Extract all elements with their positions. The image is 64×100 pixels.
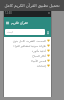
button[interactable]: أدعية مأثورة [4,48,51,53]
staticText: أدعية مأثورة [5,49,46,53]
staticText: تحميل تطبيق القرآن الكريم كامل للاندرويد… [0,3,64,9]
button[interactable]: ابحث [5,29,45,35]
staticText: المصحف الشريف كامل بدون انترنت [5,39,46,43]
button[interactable]: تلاوات صوتية لمشاهير القراء [4,43,51,48]
staticText: إعدادات [5,64,46,67]
button[interactable]: المصحف الشريف كامل بدون انترنت [4,38,51,43]
staticText: تلاوات صوتية لمشاهير القراء [5,44,46,48]
staticText: أذكار الصباح [5,54,46,58]
button[interactable]: Voice search [45,29,50,35]
staticText: 12:30 [5,11,12,15]
staticText: القرآن الكريم [11,21,29,25]
staticText: قصص الأنبياء [5,59,46,63]
button[interactable]: إعدادات [4,63,51,68]
button[interactable]: أذكار الصباح [4,53,51,58]
staticText: ابحث [7,31,13,34]
button[interactable]: Menu [4,17,11,28]
button[interactable]: قصص الأنبياء [4,58,51,63]
